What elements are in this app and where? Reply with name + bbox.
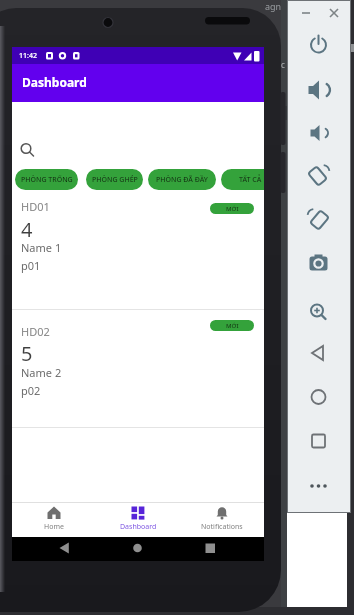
- staticText: agn: [265, 0, 282, 12]
- button[interactable]: [297, 6, 315, 20]
- button[interactable]: PHÒNG TRỐNG: [15, 169, 78, 190]
- button[interactable]: [301, 33, 336, 57]
- staticText: Name 1: [21, 240, 62, 255]
- button[interactable]: [325, 6, 343, 20]
- staticText: p01: [21, 258, 41, 273]
- staticText: Dashboard: [120, 522, 157, 532]
- staticText: HD01: [21, 199, 50, 214]
- staticText: p02: [21, 383, 41, 398]
- staticText: PHÒNG TRỐNG: [21, 175, 73, 185]
- staticText: Notifications: [201, 522, 243, 532]
- staticText: 4: [21, 216, 33, 243]
- button[interactable]: [301, 385, 336, 409]
- staticText: MỚI: [226, 205, 239, 213]
- staticText: MỚI: [226, 322, 239, 330]
- button[interactable]: PHÒNG GHÉP: [86, 169, 143, 190]
- button[interactable]: [125, 537, 149, 561]
- staticText: c: [281, 59, 285, 70]
- button[interactable]: PHÒNG ĐÃ ĐẦY: [148, 169, 216, 190]
- button[interactable]: [52, 537, 76, 561]
- button[interactable]: [301, 300, 336, 324]
- button[interactable]: [301, 429, 336, 453]
- button[interactable]: HD01: [12, 197, 264, 309]
- button[interactable]: Home: [12, 502, 96, 537]
- staticText: 11:42: [19, 51, 37, 61]
- button[interactable]: [301, 341, 336, 365]
- button[interactable]: [301, 164, 336, 188]
- staticText: 5: [21, 340, 33, 367]
- staticText: HD02: [21, 324, 50, 339]
- button[interactable]: HD02: [12, 310, 264, 427]
- staticText: Name 2: [21, 365, 62, 380]
- button[interactable]: [301, 121, 336, 145]
- staticText: Home: [44, 522, 64, 532]
- staticText: TẤT CẢ: [239, 175, 262, 185]
- button[interactable]: TẤT CẢ: [221, 169, 264, 190]
- button[interactable]: [301, 78, 336, 102]
- button[interactable]: Dashboard: [96, 502, 180, 537]
- button[interactable]: [301, 208, 336, 232]
- staticText: PHÒNG ĐÃ ĐẦY: [156, 175, 208, 185]
- button[interactable]: [301, 474, 336, 498]
- staticText: PHÒNG GHÉP: [92, 175, 138, 185]
- button[interactable]: [301, 251, 336, 275]
- staticText: Dashboard: [22, 74, 87, 90]
- button[interactable]: Notifications: [180, 502, 264, 537]
- button[interactable]: [198, 537, 222, 561]
